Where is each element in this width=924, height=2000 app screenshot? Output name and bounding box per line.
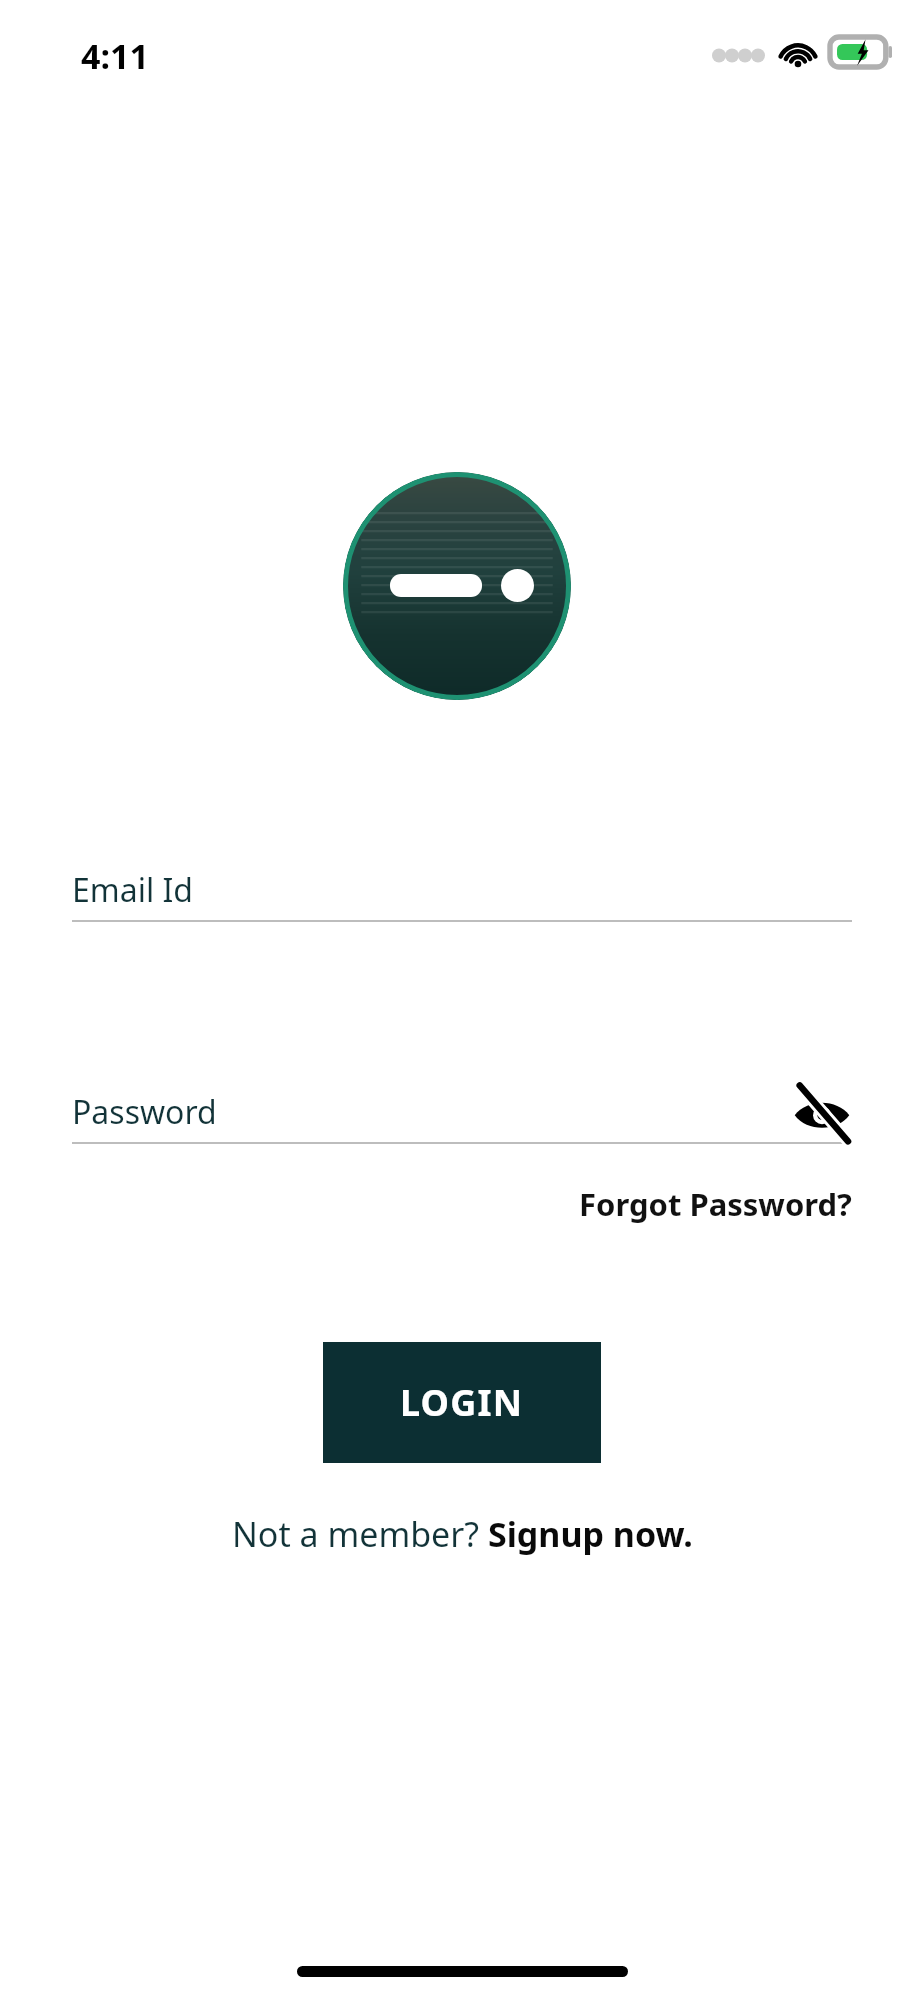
button[interactable]: Forgot Password?: [500, 1176, 852, 1232]
button[interactable]: Password: [72, 1080, 852, 1144]
staticText: Password: [72, 1090, 217, 1134]
button[interactable]: LOGIN: [323, 1342, 601, 1463]
staticText: 4:11: [81, 33, 149, 79]
staticText: Email Id: [72, 868, 194, 912]
staticText: Forgot Password?: [579, 1183, 852, 1225]
staticText: LOGIN: [400, 1378, 524, 1427]
button[interactable]: Show password: [786, 1078, 858, 1150]
button[interactable]: Email Id: [72, 858, 852, 922]
button[interactable]: Not a member? Signup now.: [0, 1500, 924, 1568]
staticText: Not a member? Signup now.: [232, 1511, 693, 1557]
